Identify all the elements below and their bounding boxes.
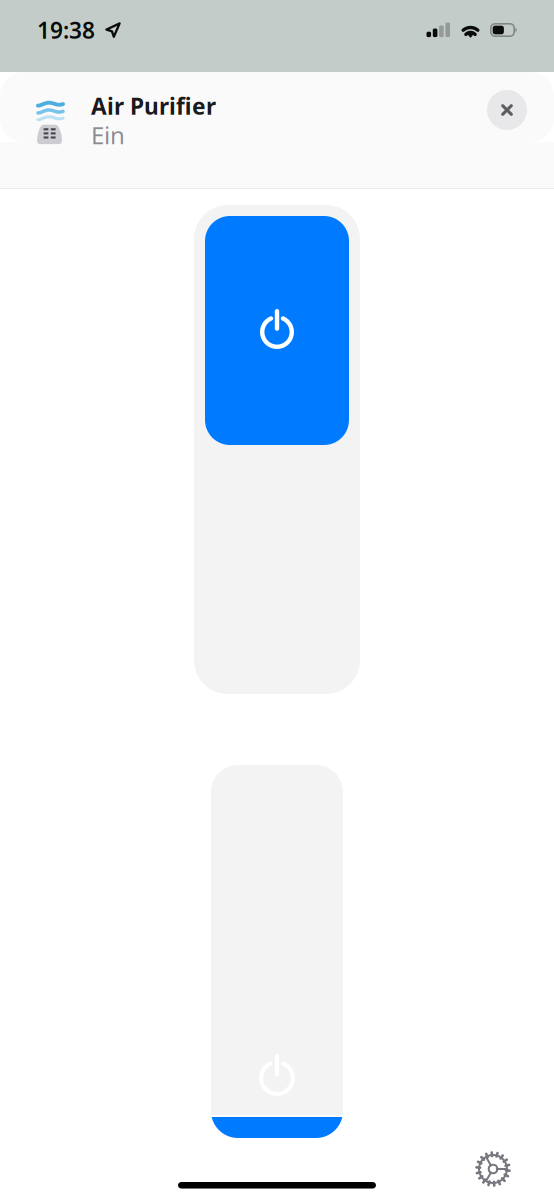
button[interactable]: Power (194, 205, 360, 694)
staticText: 19:38 (37, 15, 95, 45)
button[interactable]: Settings (474, 1150, 512, 1188)
button[interactable]: Close (487, 90, 527, 130)
button[interactable]: Power (211, 765, 343, 1138)
staticText: Ein (91, 119, 125, 151)
staticText: Air Purifier (91, 91, 216, 121)
